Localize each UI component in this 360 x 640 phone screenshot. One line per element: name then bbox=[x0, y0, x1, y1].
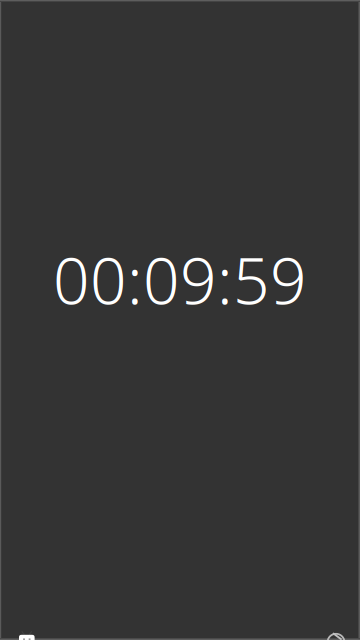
button[interactable]: Silent mode bbox=[327, 630, 345, 640]
staticText: 00:09:59 bbox=[53, 237, 307, 322]
button[interactable]: Assistant bbox=[19, 630, 35, 640]
